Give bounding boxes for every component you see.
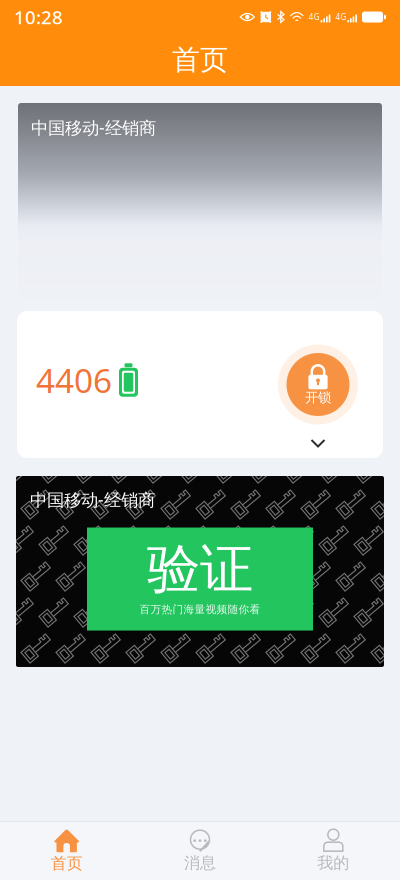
staticText: 中国移动-经销商 <box>31 116 156 139</box>
staticText: 我的 <box>317 853 349 873</box>
staticText: 中国移动-经销商 <box>30 488 155 511</box>
staticText: 百万热门海量视频随你看 <box>139 603 260 616</box>
button[interactable]: 展开 <box>292 427 344 459</box>
staticText: 4G <box>335 11 346 22</box>
staticText: 10:28 <box>14 5 63 29</box>
staticText: 首页 <box>51 854 83 873</box>
staticText: 4406 <box>36 358 112 402</box>
button[interactable]: 消息 <box>133 823 267 879</box>
staticText: 开锁 <box>305 389 331 406</box>
button[interactable]: 开锁 <box>275 341 361 427</box>
staticText: 验证 <box>147 536 253 602</box>
staticText: 消息 <box>184 853 216 873</box>
staticText: 首页 <box>172 43 228 77</box>
button[interactable]: 我的 <box>267 823 400 879</box>
button[interactable]: 首页 <box>0 823 133 879</box>
staticText: 4G <box>309 11 320 22</box>
